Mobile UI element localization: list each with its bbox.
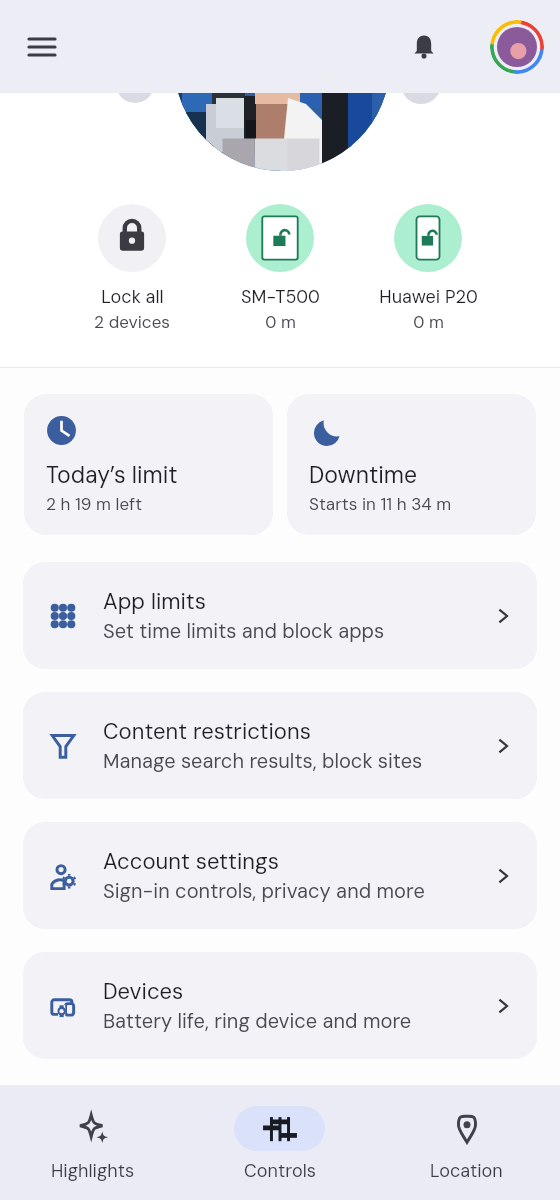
staticText: Sign-in controls, privacy and more [103,878,425,904]
button[interactable]: Content restrictions [23,692,537,799]
staticText: SM-T500 [241,285,320,308]
staticText: Controls [244,1159,316,1182]
staticText: Manage search results, block sites [103,748,423,774]
button[interactable]: Account settings [23,822,537,929]
button[interactable]: Downtime [287,394,536,535]
staticText: 2 devices [94,311,170,333]
staticText: Location [430,1159,503,1182]
staticText: Today’s limit [46,460,178,490]
staticText: Set time limits and block apps [103,618,385,644]
staticText: 2 h 19 m left [46,493,143,515]
button[interactable]: Today’s limit [24,394,273,535]
staticText: Huawei P20 [379,285,478,308]
staticText: App limits [103,587,206,616]
staticText: Starts in 11 h 34 m [309,493,452,515]
button[interactable]: Account [490,20,544,74]
staticText: Content restrictions [103,717,311,746]
staticText: 0 m [265,311,296,333]
button[interactable]: Highlights [0,1085,186,1182]
staticText: Devices [103,977,184,1006]
button[interactable]: Controls [186,1085,373,1182]
button[interactable]: Lock all [58,204,206,333]
button[interactable]: Open navigation menu [14,19,70,75]
button[interactable]: SM-T500 [206,204,354,333]
staticText: Highlights [51,1159,135,1182]
staticText: Downtime [309,460,418,490]
staticText: 0 m [413,311,444,333]
button[interactable]: App limits [23,562,537,669]
staticText: Account settings [103,847,279,876]
button[interactable]: Huawei P20 [354,204,502,333]
button[interactable]: Notifications [398,21,450,73]
button[interactable]: Location [373,1085,560,1182]
staticText: Battery life, ring device and more [103,1008,412,1034]
staticText: Lock all [101,285,164,308]
button[interactable]: Devices [23,952,537,1059]
